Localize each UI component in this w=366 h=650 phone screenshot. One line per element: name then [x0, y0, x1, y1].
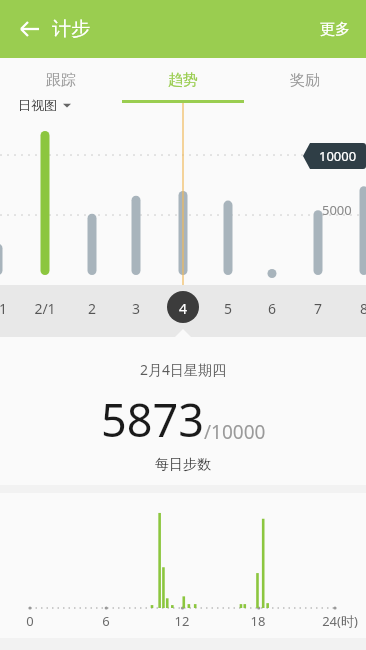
- staticText: 1: [0, 299, 23, 318]
- staticText: 奖励: [290, 71, 320, 90]
- staticText: 8: [344, 299, 366, 318]
- button[interactable]: 奖励: [244, 58, 366, 103]
- staticText: 6: [252, 299, 292, 318]
- button[interactable]: 跟踪: [0, 58, 122, 103]
- button[interactable]: 趋势: [122, 58, 244, 103]
- staticText: 0: [5, 612, 55, 630]
- staticText: 趋势: [168, 71, 198, 90]
- button[interactable]: 日视图: [18, 97, 71, 113]
- staticText: 日视图: [18, 97, 57, 113]
- staticText: 3: [116, 299, 156, 318]
- staticText: 2月4日星期四: [140, 360, 227, 379]
- button[interactable]: 更多: [304, 10, 366, 49]
- staticText: 每日步数: [155, 456, 211, 474]
- staticText: 10000: [319, 147, 357, 165]
- staticText: /10000: [204, 419, 266, 445]
- staticText: 2: [72, 299, 112, 318]
- staticText: 7: [298, 299, 338, 318]
- staticText: 更多: [320, 20, 350, 39]
- button[interactable]: Back: [10, 9, 50, 49]
- staticText: 4: [163, 299, 203, 318]
- staticText: 2/1: [25, 299, 65, 318]
- staticText: 12: [157, 612, 207, 630]
- staticText: 计步: [52, 17, 90, 41]
- staticText: 5000: [322, 201, 352, 219]
- button[interactable]: 1: [0, 285, 366, 337]
- staticText: 6: [81, 612, 131, 630]
- staticText: 18: [233, 612, 283, 630]
- staticText: 跟踪: [46, 71, 76, 90]
- staticText: 5873: [101, 389, 204, 450]
- staticText: 24(时): [315, 612, 365, 630]
- staticText: 5: [208, 299, 248, 318]
